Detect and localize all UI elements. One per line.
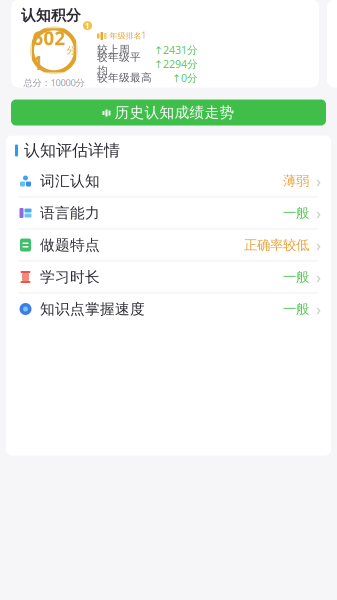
staticText: 一般 (283, 269, 309, 285)
button[interactable]: 做题特点 (6, 229, 331, 260)
staticText: 做题特点 (40, 236, 100, 254)
staticText: › (316, 202, 321, 224)
button[interactable]: 知识点掌握速度 (6, 293, 331, 324)
staticText: 较年级平均 (97, 51, 141, 77)
staticText: 学习时长 (40, 268, 100, 286)
staticText: 总分：10000分 (23, 76, 84, 89)
staticText: 年级排名1 (109, 30, 146, 41)
staticText: 语言能力 (40, 204, 100, 222)
staticText: 历史认知成绩走势 (114, 103, 234, 121)
staticText: ↑0分 (172, 71, 198, 85)
staticText: › (316, 234, 321, 256)
staticText: 一般 (283, 205, 309, 221)
staticText: 较年级最高 (97, 71, 152, 84)
staticText: 知识点掌握速度 (40, 300, 145, 318)
staticText: ↑2431分 (154, 43, 198, 57)
staticText: › (316, 170, 321, 192)
staticText: 6021 (32, 25, 65, 75)
staticText: 分 (66, 45, 75, 56)
staticText: 正确率较低 (244, 237, 309, 253)
staticText: 一般 (283, 301, 309, 317)
button[interactable]: 语言能力 (6, 197, 331, 228)
staticText: 认知积分 (21, 6, 81, 24)
button[interactable]: 词汇认知 (6, 165, 331, 196)
staticText: › (316, 298, 321, 320)
staticText: 词汇认知 (40, 172, 100, 190)
staticText: 1 (85, 20, 90, 31)
staticText: 认知评估详情 (24, 141, 120, 160)
button[interactable]: 历史认知成绩走势 (11, 99, 326, 125)
staticText: 薄弱 (283, 173, 309, 189)
staticText: › (316, 266, 321, 288)
staticText: 较上周 (97, 43, 130, 56)
button[interactable]: 学习时长 (6, 261, 331, 292)
staticText: ↑2294分 (154, 57, 198, 71)
